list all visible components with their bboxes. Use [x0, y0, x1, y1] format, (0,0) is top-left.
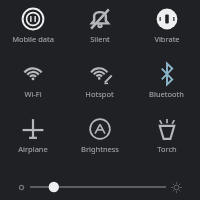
button[interactable]: Brightness [66, 116, 133, 164]
staticText: Mobile data [12, 34, 54, 44]
staticText: Wi-Fi [24, 89, 42, 99]
button[interactable]: Mobile data [0, 6, 66, 54]
staticText: Brightness [81, 144, 119, 154]
button[interactable]: Hotspot [66, 61, 133, 109]
button[interactable]: Silent [66, 6, 133, 54]
staticText: Airplane [18, 144, 48, 154]
staticText: Torch [157, 144, 177, 154]
button[interactable]: Airplane [0, 116, 66, 164]
staticText: Hotspot [85, 89, 114, 99]
button[interactable]: Torch [133, 116, 200, 164]
staticText: Bluetooth [149, 89, 184, 99]
button[interactable]: Bluetooth [133, 61, 200, 109]
button[interactable]: Wi-Fi [0, 61, 66, 109]
staticText: Silent [90, 34, 110, 44]
button[interactable]: Brightness slider [18, 174, 182, 200]
staticText: Vibrate [154, 34, 180, 44]
button[interactable]: Vibrate [133, 6, 200, 54]
